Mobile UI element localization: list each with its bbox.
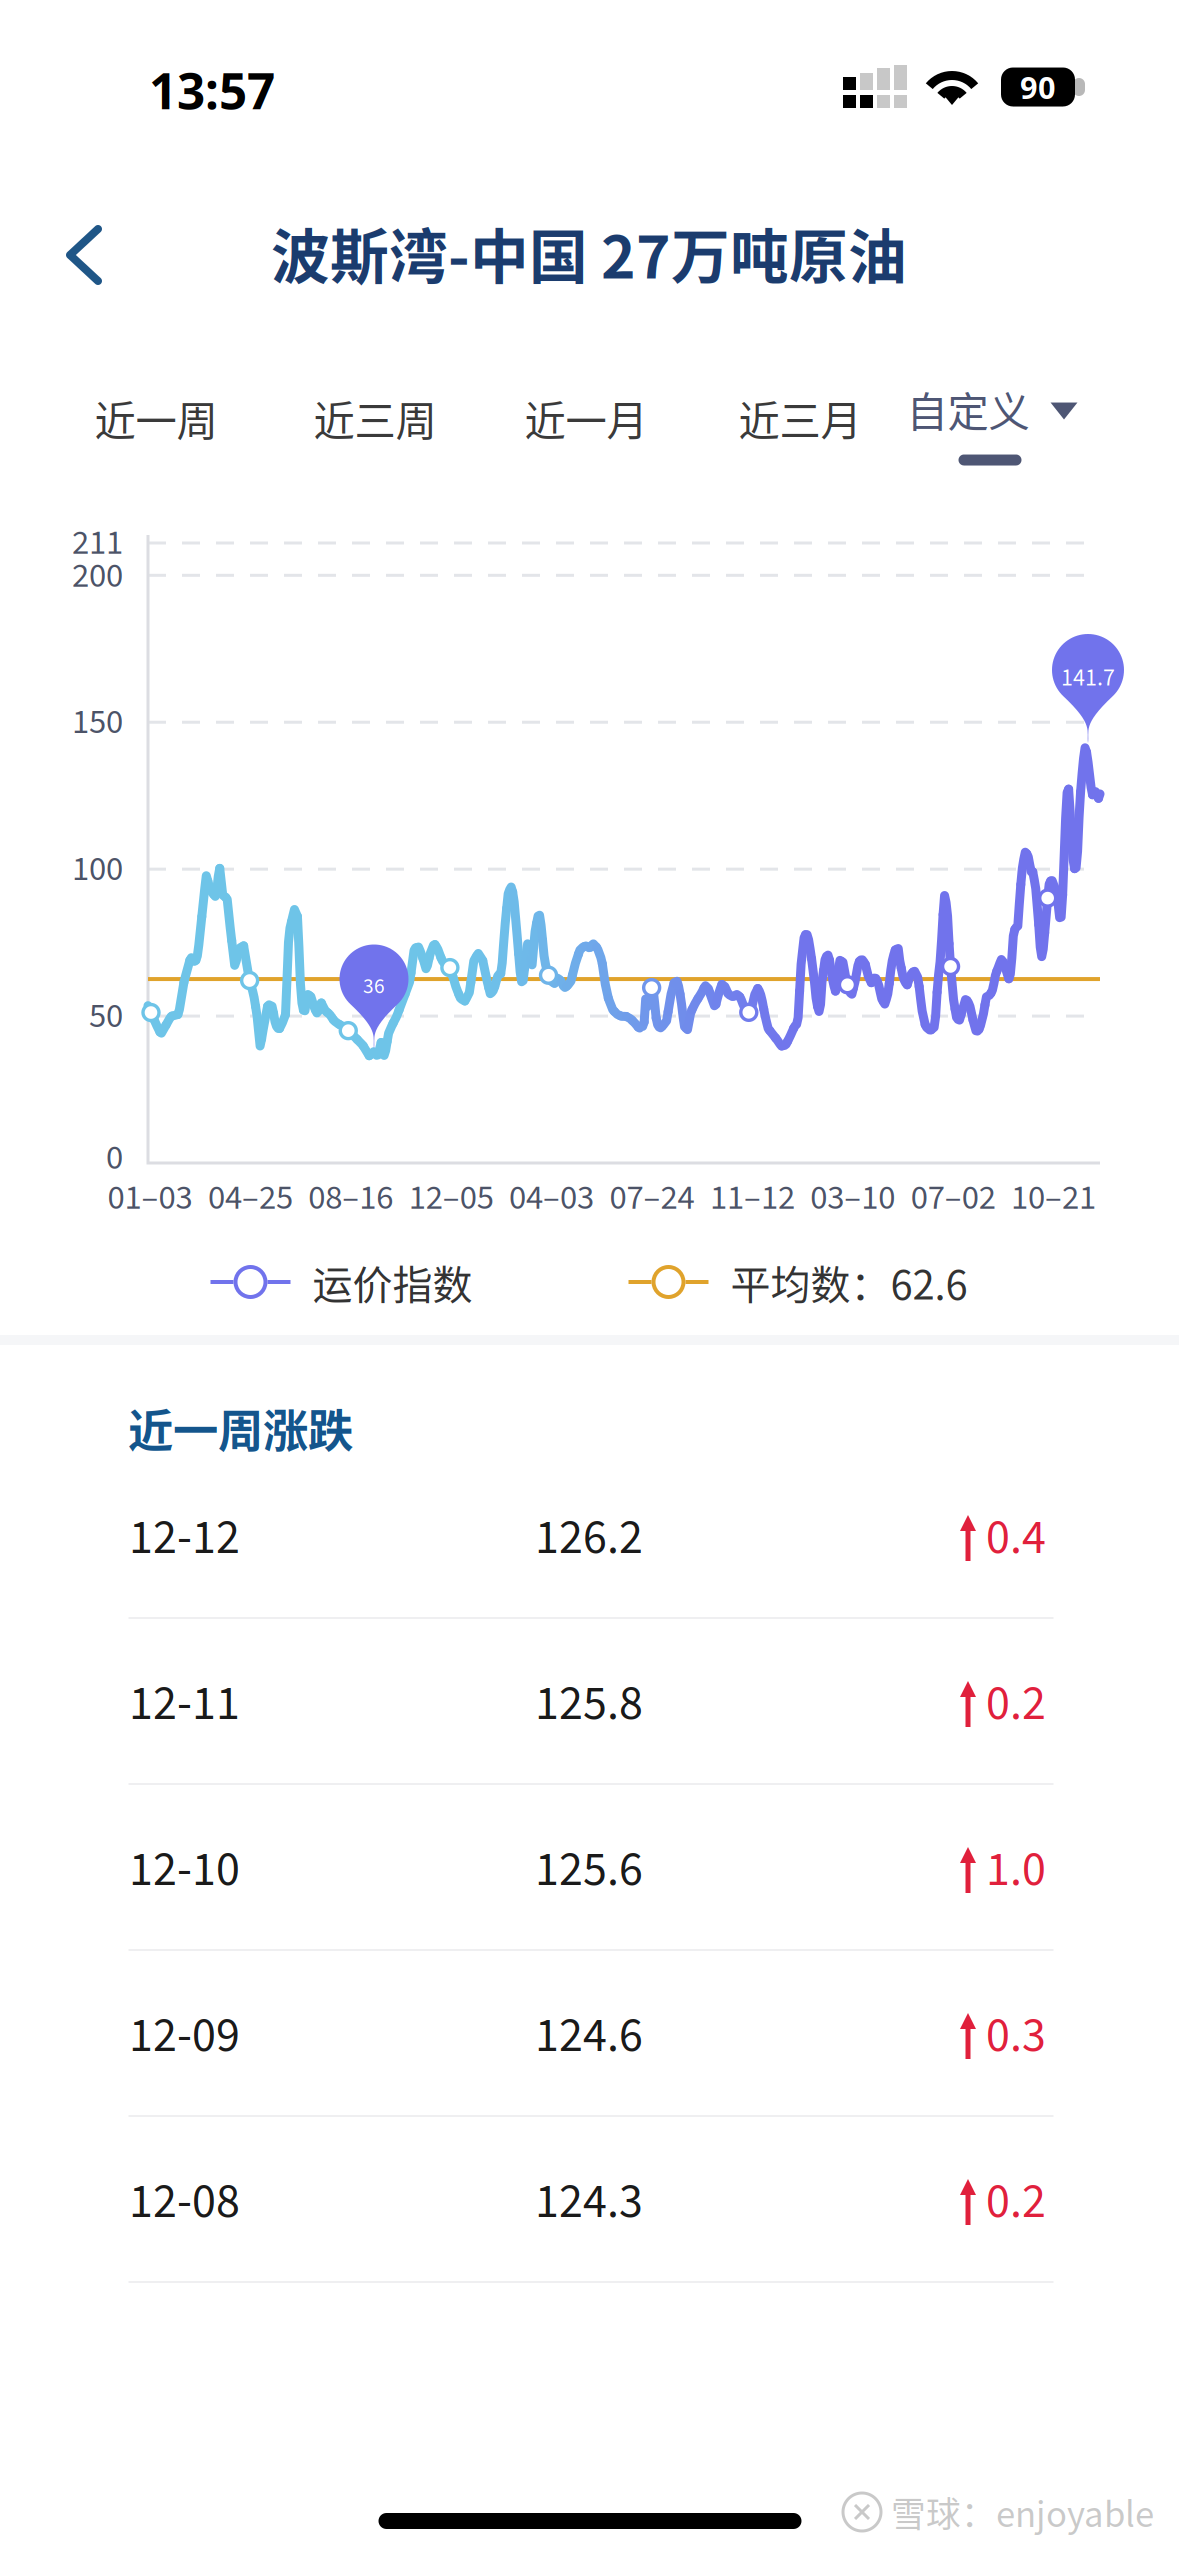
staticText: 12-08 bbox=[129, 2168, 240, 2236]
staticText: 125.6 bbox=[535, 1836, 643, 1904]
staticText: 波斯湾-中国 27万吨原油 bbox=[271, 210, 907, 295]
button[interactable]: 近一周 bbox=[56, 362, 256, 474]
staticText: 近一周 bbox=[94, 388, 217, 448]
staticText: 平均数：62.6 bbox=[730, 1253, 967, 1311]
staticText: 0 bbox=[106, 1133, 123, 1183]
staticText: 125.8 bbox=[535, 1670, 643, 1738]
staticText: 近一周涨跌 bbox=[128, 1395, 353, 1461]
staticText: 90 bbox=[1020, 66, 1056, 108]
button[interactable]: 近一月 bbox=[486, 362, 686, 474]
staticText: 50 bbox=[89, 991, 123, 1041]
staticText: 自定义 bbox=[906, 379, 1029, 439]
staticText: 01–03 bbox=[107, 1173, 192, 1223]
staticText: 126.2 bbox=[535, 1504, 643, 1572]
staticText: 近三月 bbox=[738, 388, 861, 448]
staticText: 12–05 bbox=[409, 1173, 494, 1223]
staticText: 100 bbox=[72, 844, 123, 894]
staticText: 0.4 bbox=[986, 1504, 1046, 1572]
button[interactable]: 12-10 bbox=[0, 1815, 1179, 1981]
button[interactable]: 12-09 bbox=[0, 1981, 1179, 2147]
staticText: 03–10 bbox=[810, 1173, 895, 1223]
staticText: 0.2 bbox=[986, 1670, 1046, 1738]
staticText: 10–21 bbox=[1011, 1173, 1096, 1223]
staticText: 11–12 bbox=[710, 1173, 795, 1223]
staticText: 12-12 bbox=[129, 1504, 240, 1572]
staticText: 04–03 bbox=[509, 1173, 594, 1223]
staticText: 150 bbox=[72, 698, 123, 747]
staticText: 200 bbox=[72, 551, 123, 601]
staticText: 04–25 bbox=[208, 1173, 293, 1223]
staticText: 12-09 bbox=[129, 2002, 240, 2070]
staticText: 08–16 bbox=[308, 1173, 393, 1223]
staticText: 12-11 bbox=[129, 1670, 240, 1738]
button[interactable]: Back bbox=[20, 179, 148, 331]
staticText: 211 bbox=[72, 518, 123, 568]
staticText: 雪球：enjoyable bbox=[891, 2487, 1154, 2537]
button[interactable]: 近三周 bbox=[275, 362, 475, 474]
button[interactable]: 12-11 bbox=[0, 1649, 1179, 1815]
staticText: 124.6 bbox=[535, 2002, 643, 2070]
staticText: 07–24 bbox=[609, 1173, 694, 1223]
staticText: 36 bbox=[363, 971, 385, 1002]
staticText: 07–02 bbox=[911, 1173, 996, 1223]
staticText: 运价指数 bbox=[312, 1253, 472, 1311]
button[interactable]: 12-08 bbox=[0, 2147, 1179, 2313]
staticText: 13:57 bbox=[149, 56, 275, 124]
staticText: 141.7 bbox=[1061, 661, 1115, 695]
staticText: 近一月 bbox=[524, 388, 647, 448]
staticText: 0.3 bbox=[986, 2002, 1046, 2070]
button[interactable]: 近三月 bbox=[700, 362, 900, 474]
staticText: 近三周 bbox=[313, 388, 436, 448]
staticText: 1.0 bbox=[986, 1836, 1046, 1904]
staticText: 124.3 bbox=[535, 2168, 643, 2236]
staticText: 0.2 bbox=[986, 2168, 1046, 2236]
button[interactable]: 自定义 bbox=[893, 353, 1133, 483]
staticText: 12-10 bbox=[129, 1836, 240, 1904]
button[interactable]: 12-12 bbox=[0, 1483, 1179, 1649]
